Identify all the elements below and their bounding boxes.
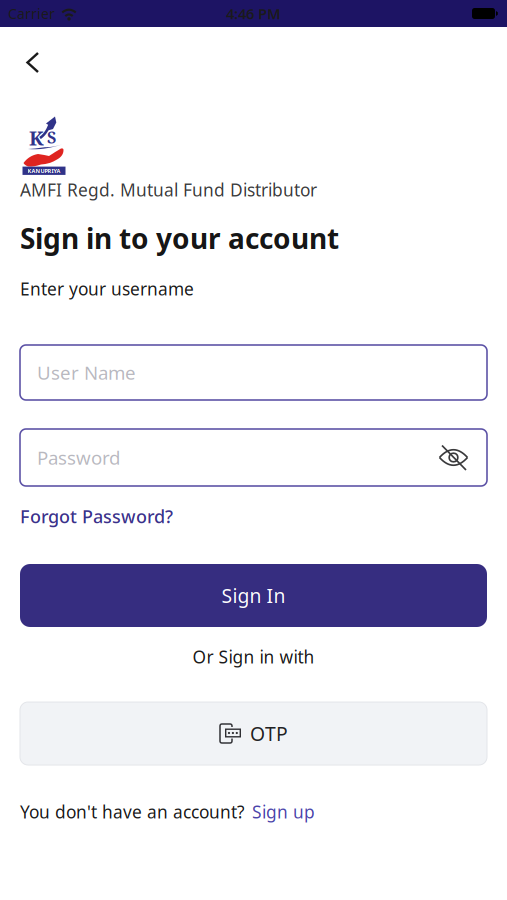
- staticText: You don't have an account?: [20, 800, 245, 824]
- staticText: KANUPRIYA: [27, 167, 60, 174]
- staticText: Forgot Password?: [20, 504, 173, 528]
- button[interactable]: Password: [20, 429, 487, 486]
- button[interactable]: Back: [14, 40, 52, 85]
- staticText: Sign up: [252, 800, 315, 824]
- button[interactable]: Sign In: [20, 564, 487, 627]
- staticText: K: [29, 124, 44, 151]
- staticText: Sign In: [221, 582, 285, 609]
- staticText: 4:46 PM: [226, 3, 281, 23]
- button[interactable]: OTP: [20, 702, 487, 765]
- staticText: Sign in to your account: [20, 219, 339, 257]
- staticText: AMFI Regd. Mutual Fund Distributor: [20, 178, 317, 202]
- staticText: S: [47, 126, 56, 148]
- staticText: Password: [37, 445, 120, 470]
- button[interactable]: Sign up: [252, 800, 315, 824]
- button[interactable]: Show password: [438, 444, 469, 471]
- staticText: Enter your username: [20, 277, 194, 301]
- button[interactable]: Forgot Password?: [20, 504, 173, 528]
- staticText: Or Sign in with: [192, 645, 314, 669]
- staticText: User Name: [37, 360, 136, 385]
- button[interactable]: User Name: [20, 345, 487, 400]
- staticText: Carrier: [8, 4, 55, 23]
- staticText: OTP: [250, 720, 288, 747]
